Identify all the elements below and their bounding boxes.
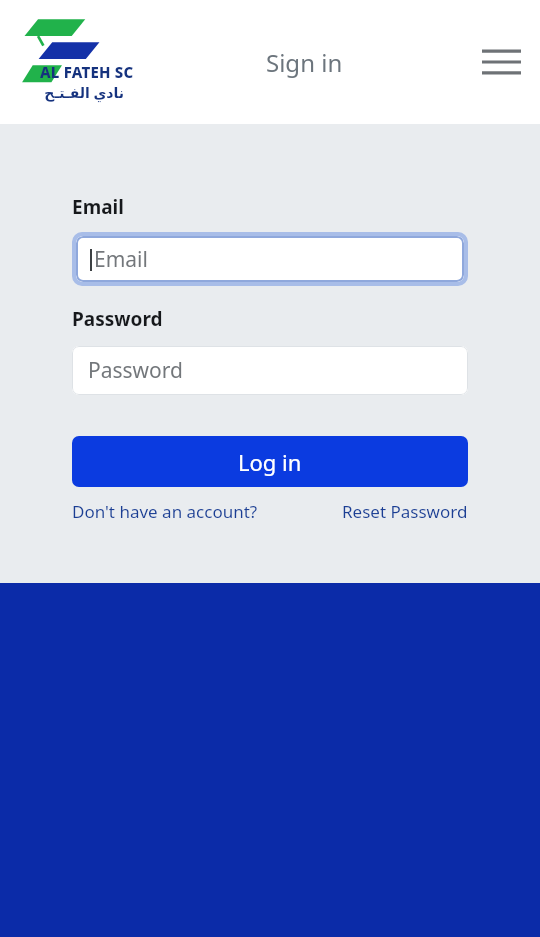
button[interactable]: Log in — [72, 436, 468, 487]
staticText: Email — [94, 245, 148, 274]
button[interactable]: Password — [72, 346, 468, 395]
staticText: Password — [88, 356, 183, 385]
button[interactable]: Menu — [474, 35, 528, 89]
button[interactable]: Don't have an account? — [72, 496, 258, 527]
staticText: نادي الفـتـح — [40, 83, 124, 102]
button[interactable]: Reset Password — [342, 496, 468, 527]
staticText: Email — [72, 194, 124, 220]
staticText: Log in — [238, 447, 302, 477]
staticText: Don't have an account? — [72, 500, 258, 523]
staticText: AL FATEH SC — [40, 62, 134, 82]
staticText: Reset Password — [342, 500, 468, 523]
button[interactable]: Sign in — [258, 40, 351, 85]
button[interactable]: Al Fateh SC home — [18, 14, 136, 110]
button[interactable]: Email — [76, 236, 464, 282]
staticText: Sign in — [266, 46, 343, 79]
staticText: Password — [72, 306, 163, 332]
